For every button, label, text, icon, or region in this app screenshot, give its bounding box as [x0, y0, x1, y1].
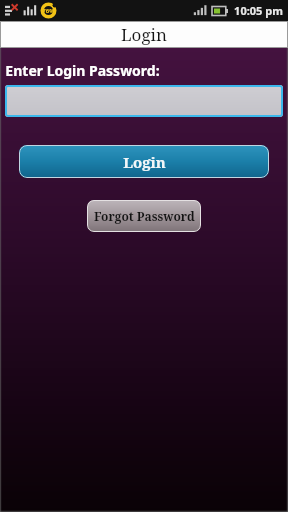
staticText: 10:05 pm — [234, 3, 283, 18]
staticText: Login — [121, 23, 167, 46]
staticText: Login — [123, 152, 166, 172]
staticText: Enter Login Password: — [5, 61, 160, 80]
button[interactable]: Forgot Password — [87, 200, 201, 232]
other: Sync — [4, 4, 18, 17]
staticText: Forgot Password — [94, 208, 195, 224]
button[interactable]: Login — [19, 145, 269, 178]
button[interactable]: Password field — [5, 85, 283, 117]
staticText: 76% — [42, 7, 55, 15]
